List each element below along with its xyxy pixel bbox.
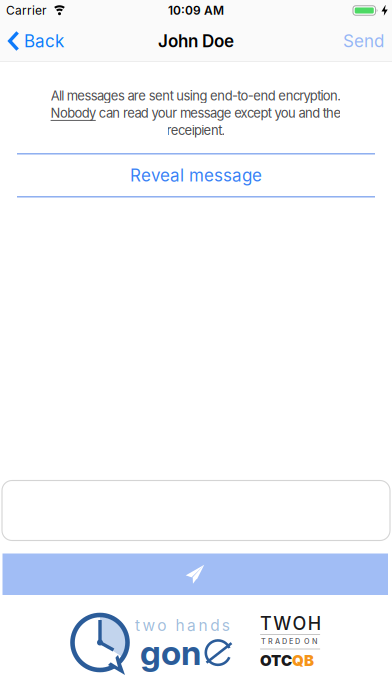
button[interactable]: Reveal message	[17, 154, 375, 196]
staticText: two hands	[135, 616, 236, 635]
staticText: John Doe	[158, 31, 234, 51]
staticText: receipient.	[166, 122, 225, 138]
button[interactable]: Back	[0, 31, 64, 51]
button[interactable]: Send	[343, 31, 392, 51]
staticText: Send	[343, 31, 384, 51]
staticText: OTC	[260, 651, 292, 670]
staticText: QB	[292, 651, 314, 670]
staticText: All messages are sent using end-to-end e…	[51, 88, 341, 104]
staticText: Back	[24, 31, 64, 51]
staticText: 10:09 AM	[168, 3, 224, 18]
button[interactable]: Send message	[0, 553, 392, 595]
button[interactable]: Message text field	[0, 480, 392, 540]
staticText: Carrier	[6, 3, 47, 18]
staticText: gon	[140, 632, 201, 673]
staticText: TWOH	[260, 612, 327, 634]
staticText: T R A D E D O N	[261, 637, 317, 646]
staticText: Reveal message	[130, 165, 262, 186]
staticText: Nobody can read your message except you …	[51, 105, 341, 121]
